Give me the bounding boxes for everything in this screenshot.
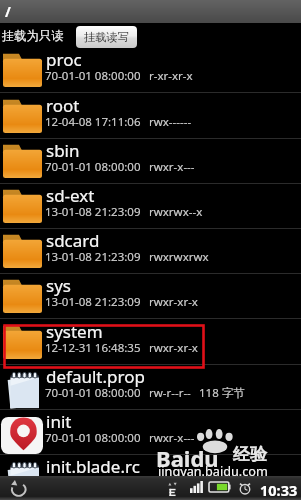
button[interactable]: 挂载为只读 — [0, 28, 64, 43]
staticText: rwxrwx--x — [149, 204, 203, 220]
staticText: 12-12-31 16:48:35 — [45, 340, 141, 356]
staticText: rwxr-x--- — [149, 159, 195, 175]
staticText: rwxr-xr-x — [149, 294, 198, 310]
staticText: r-xr-xr-x — [149, 68, 193, 84]
staticText: rwxr-xr-x — [149, 340, 198, 356]
staticText: 13-01-08 21:23:09 — [45, 294, 141, 310]
staticText: rw-r--r-- — [149, 385, 191, 401]
staticText: 70-01-01 08:00:00 — [45, 385, 141, 401]
staticText: root — [46, 94, 80, 117]
staticText: init — [46, 410, 72, 433]
staticText: 70-01-01 08:00:00 — [45, 68, 141, 84]
staticText: 经验 — [233, 444, 267, 465]
button[interactable]: root — [0, 94, 301, 139]
button[interactable]: init.blade.rc — [0, 455, 301, 500]
staticText: default.prop — [46, 365, 145, 388]
button[interactable]: sbin — [0, 139, 301, 184]
staticText: 10:33 — [260, 480, 298, 500]
button[interactable]: proc — [0, 48, 301, 93]
button[interactable]: sd-ext — [0, 184, 301, 229]
staticText: rwxr-x--- — [149, 430, 195, 446]
staticText: Baidu — [156, 443, 219, 473]
staticText: 118 字节 — [199, 385, 245, 401]
button[interactable]: system — [0, 320, 301, 365]
staticText: rwxr-x--- — [149, 475, 195, 491]
staticText: rwxrwxrwx — [149, 249, 209, 265]
button[interactable]: init — [0, 410, 301, 455]
staticText: 70-01-01 08:00:00 — [45, 430, 141, 446]
staticText: rwx------ — [149, 114, 192, 130]
button[interactable]: Back — [9, 478, 27, 497]
staticText: system — [46, 320, 103, 343]
staticText: / — [5, 2, 11, 21]
staticText: init.blade.rc — [46, 455, 140, 478]
staticText: sys — [46, 274, 71, 297]
button[interactable]: sdcard — [0, 229, 301, 274]
staticText: 70-01-01 08:00:00 — [45, 475, 141, 491]
staticText: jingyan.baidu.com — [158, 462, 268, 479]
button[interactable]: 挂载读写 — [76, 26, 137, 48]
staticText: 12-04-08 17:11:06 — [45, 114, 141, 130]
staticText: 13-01-08 21:23:09 — [45, 249, 141, 265]
button[interactable]: sys — [0, 274, 301, 319]
staticText: sd-ext — [46, 184, 95, 207]
staticText: 挂载读写 — [84, 30, 130, 44]
staticText: proc — [46, 48, 82, 71]
staticText: sdcard — [46, 229, 100, 252]
staticText: 13-01-08 21:23:09 — [45, 204, 141, 220]
staticText: 70-01-01 08:00:00 — [45, 159, 141, 175]
button[interactable]: default.prop — [0, 365, 301, 410]
staticText: sbin — [46, 139, 80, 162]
